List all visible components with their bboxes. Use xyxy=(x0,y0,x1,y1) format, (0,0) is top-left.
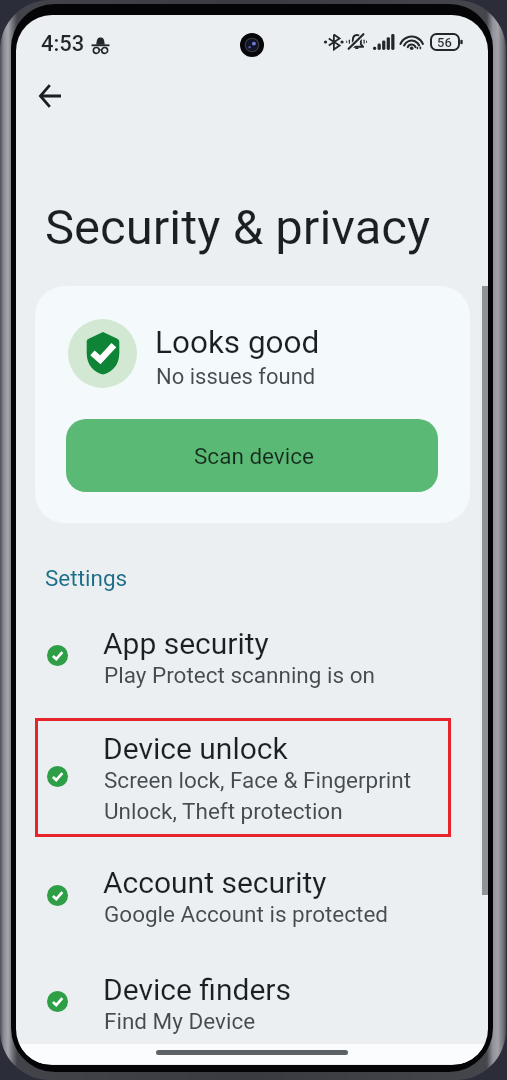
staticText: Google Account is protected xyxy=(104,901,389,927)
staticText: Looks good xyxy=(155,324,320,361)
button[interactable]: Device finders xyxy=(16,954,488,1051)
button[interactable]: Account security xyxy=(16,847,488,944)
button[interactable]: Scan device xyxy=(66,419,438,492)
staticText: Find My Device xyxy=(104,1008,256,1034)
staticText: Account security xyxy=(103,865,327,900)
staticText: No issues found xyxy=(156,364,316,390)
staticText: Screen lock, Face & Fingerprint xyxy=(104,767,412,793)
staticText: Play Protect scanning is on xyxy=(104,662,375,688)
staticText: App security xyxy=(103,626,269,661)
staticText: 4:53 xyxy=(41,31,85,57)
staticText: Unlock, Theft protection xyxy=(104,798,343,824)
button[interactable]: Back xyxy=(26,72,74,120)
staticText: Scan device xyxy=(194,443,314,469)
staticText: Security & privacy xyxy=(45,199,431,256)
staticText: Device finders xyxy=(103,972,291,1007)
staticText: 56 xyxy=(437,35,452,50)
button[interactable]: App security xyxy=(16,608,488,705)
staticText: Settings xyxy=(45,565,128,591)
staticText: Device unlock xyxy=(103,731,288,766)
button[interactable]: Device unlock xyxy=(16,713,488,841)
